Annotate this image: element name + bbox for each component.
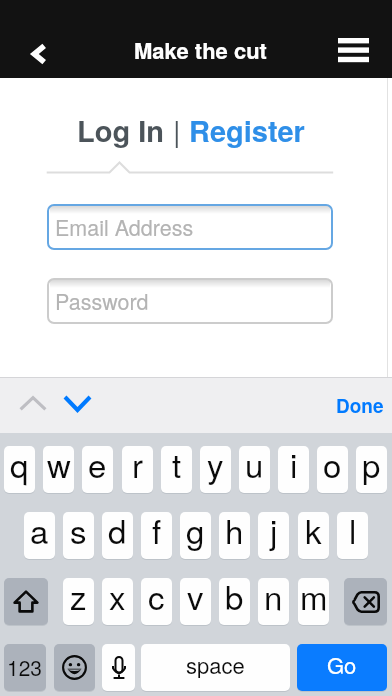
- button[interactable]: v: [180, 578, 211, 625]
- button[interactable]: a: [24, 512, 55, 559]
- button[interactable]: y: [200, 446, 231, 493]
- staticText: s: [70, 512, 87, 553]
- button[interactable]: Menu: [330, 26, 380, 76]
- button[interactable]: s: [63, 512, 94, 559]
- button[interactable]: Register: [189, 109, 305, 151]
- staticText: a: [30, 512, 49, 553]
- button[interactable]: space: [141, 644, 290, 691]
- button[interactable]: h: [219, 512, 250, 559]
- staticText: f: [152, 512, 162, 553]
- staticText: Email Address: [55, 211, 194, 242]
- staticText: q: [10, 446, 29, 487]
- button[interactable]: p: [356, 446, 387, 493]
- staticText: p: [362, 446, 381, 487]
- staticText: |: [165, 109, 189, 151]
- button[interactable]: u: [239, 446, 270, 493]
- staticText: Make the cut: [134, 34, 267, 66]
- button[interactable]: g: [180, 512, 211, 559]
- button[interactable]: e: [82, 446, 113, 493]
- button[interactable]: Done: [326, 377, 392, 433]
- staticText: x: [109, 578, 126, 619]
- staticText: m: [300, 578, 328, 619]
- button[interactable]: Go: [297, 644, 387, 691]
- button[interactable]: r: [122, 446, 153, 493]
- staticText: o: [323, 446, 342, 487]
- button[interactable]: l: [337, 512, 368, 559]
- staticText: t: [172, 446, 182, 487]
- staticText: j: [270, 512, 278, 553]
- staticText: r: [132, 446, 143, 487]
- staticText: 123: [7, 652, 43, 682]
- button[interactable]: m: [298, 578, 329, 625]
- button[interactable]: z: [63, 578, 94, 625]
- staticText: z: [70, 578, 87, 619]
- staticText: n: [264, 578, 283, 619]
- button[interactable]: i: [278, 446, 309, 493]
- staticText: Done: [336, 392, 384, 419]
- staticText: u: [245, 446, 264, 487]
- button[interactable]: Emoji: [54, 644, 95, 691]
- button[interactable]: Dictate: [102, 644, 135, 691]
- staticText: g: [186, 512, 205, 553]
- staticText: c: [148, 578, 165, 619]
- button[interactable]: k: [298, 512, 329, 559]
- staticText: d: [108, 512, 127, 553]
- button[interactable]: Backspace: [344, 578, 387, 625]
- staticText: b: [225, 578, 244, 619]
- button[interactable]: Previous field: [6, 377, 60, 432]
- button[interactable]: Password: [47, 278, 333, 324]
- staticText: h: [225, 512, 244, 553]
- staticText: Password: [55, 285, 149, 316]
- button[interactable]: x: [102, 578, 133, 625]
- button[interactable]: Log In: [77, 109, 165, 151]
- button[interactable]: Back: [8, 28, 60, 78]
- staticText: y: [207, 446, 224, 487]
- button[interactable]: c: [141, 578, 172, 625]
- staticText: Go: [327, 649, 357, 681]
- button[interactable]: Next field: [50, 377, 106, 432]
- button[interactable]: n: [258, 578, 289, 625]
- staticText: i: [290, 446, 298, 487]
- staticText: space: [186, 649, 245, 681]
- button[interactable]: Shift: [4, 578, 48, 625]
- button[interactable]: w: [43, 446, 74, 493]
- staticText: l: [349, 512, 357, 553]
- staticText: v: [187, 578, 204, 619]
- staticText: k: [305, 512, 322, 553]
- button[interactable]: q: [4, 446, 35, 493]
- button[interactable]: j: [258, 512, 289, 559]
- staticText: e: [88, 446, 107, 487]
- button[interactable]: f: [141, 512, 172, 559]
- button[interactable]: d: [102, 512, 133, 559]
- staticText: w: [47, 446, 71, 487]
- button[interactable]: b: [219, 578, 250, 625]
- button[interactable]: o: [317, 446, 348, 493]
- button[interactable]: Email Address: [47, 204, 333, 250]
- button[interactable]: t: [161, 446, 192, 493]
- button[interactable]: 123: [4, 644, 46, 691]
